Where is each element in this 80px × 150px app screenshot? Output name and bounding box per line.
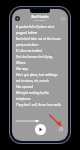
- staticText: But she knows she's lying: [16, 55, 53, 59]
- staticText: All night waiting by the: [16, 91, 50, 95]
- staticText: popped before: [16, 31, 38, 35]
- staticText: Where: [16, 61, 26, 65]
- staticText: Ed Sheeran: [34, 19, 46, 22]
- staticText: They don't call, these four walls: [16, 103, 61, 107]
- button[interactable]: Seek: [16, 119, 39, 123]
- staticText: Bad Habits: [31, 15, 49, 19]
- staticText: She says: [16, 67, 29, 71]
- button[interactable]: Play: [35, 124, 46, 135]
- staticText: telephone: [16, 97, 31, 101]
- staticText: A pocket full of jokers chat: [16, 25, 55, 29]
- staticText: And she'd take me at the house: [16, 37, 62, 41]
- button[interactable]: Comments: [60, 16, 65, 21]
- staticText: party next door: [16, 43, 39, 47]
- staticText: It's fine we invited: [16, 49, 43, 53]
- staticText: She opened: [16, 85, 33, 89]
- button[interactable]: Profile: [15, 16, 20, 21]
- button[interactable]: Share: [58, 126, 64, 132]
- staticText: set in stone, oh, ooooh: [16, 79, 49, 83]
- staticText: She's got plans, but nothings: [16, 73, 58, 77]
